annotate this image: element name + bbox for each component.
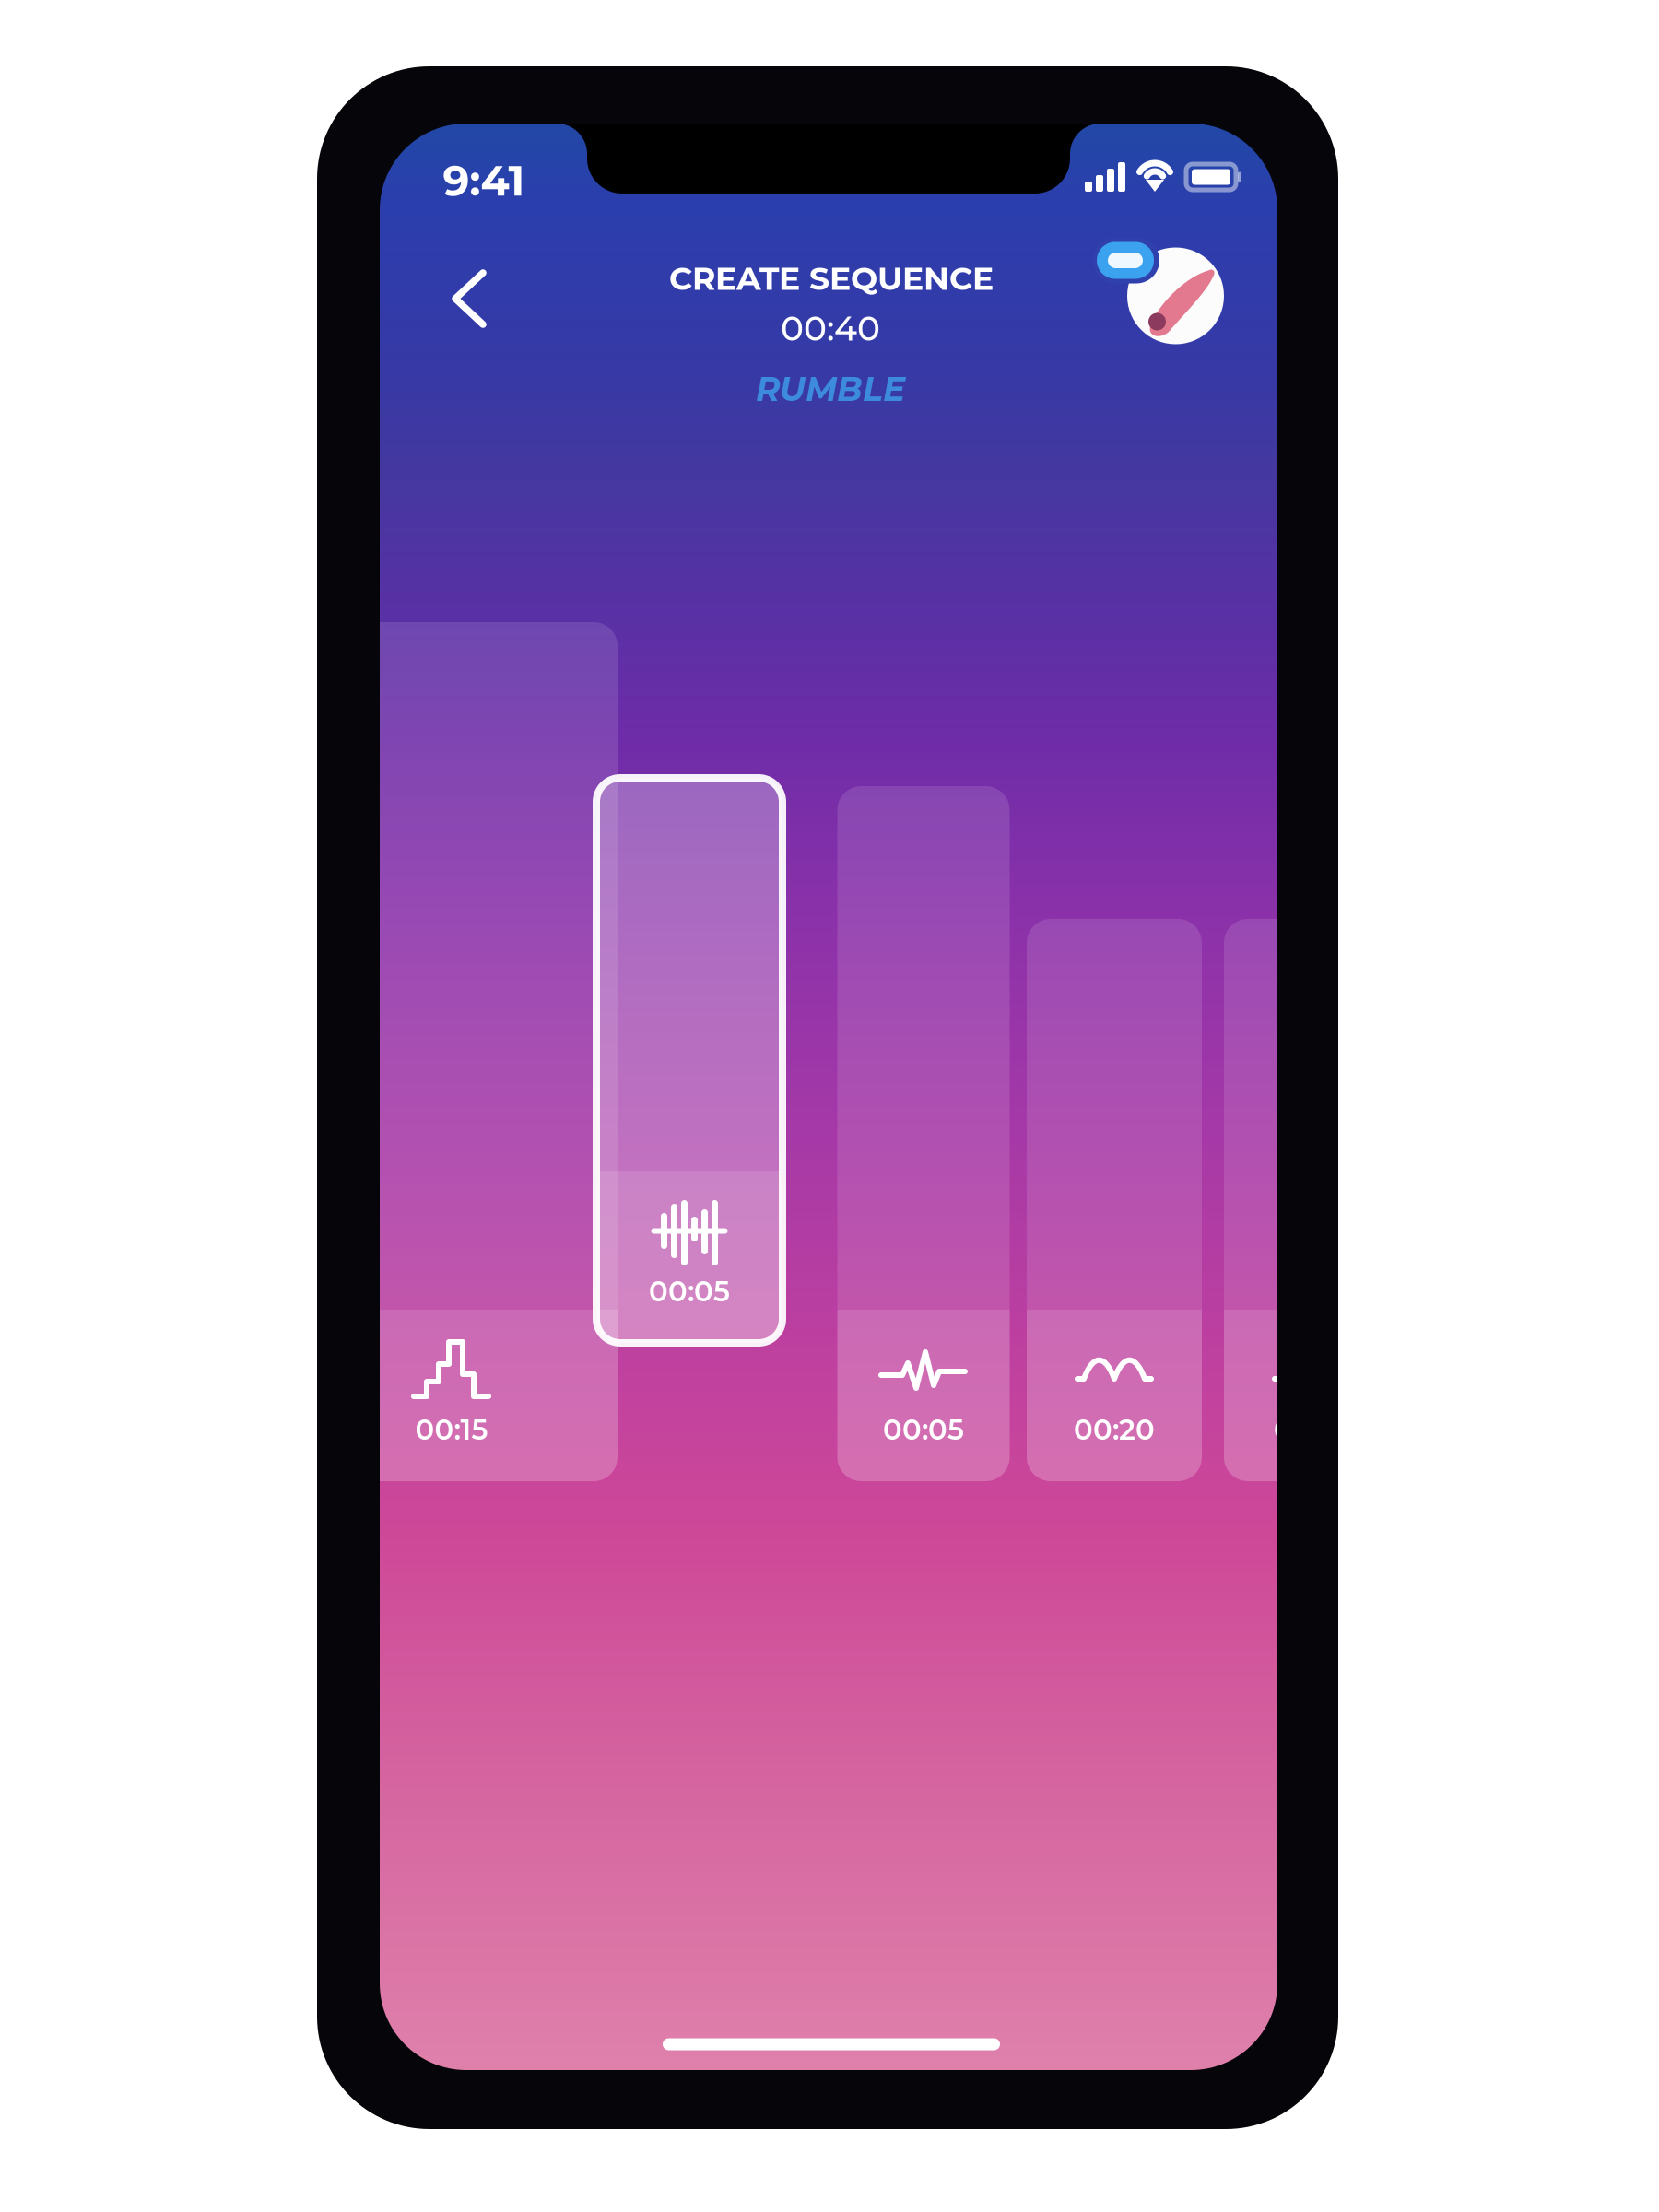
staticText: CREATE SEQUENCE <box>669 259 994 298</box>
staticText: 00:05 <box>883 1412 964 1447</box>
button[interactable]: 00:05 <box>596 778 782 1343</box>
staticText: 00:15 <box>415 1412 488 1447</box>
button[interactable]: 00:05 <box>837 786 1010 1481</box>
staticText: 00:40 <box>781 307 880 349</box>
staticText: RUMBLE <box>756 369 905 409</box>
button[interactable]: Back <box>419 249 519 348</box>
button[interactable]: 00:10 <box>1224 919 1399 1481</box>
button[interactable]: Connected device: battery level <box>1097 242 1224 344</box>
button[interactable]: 00:15 <box>286 622 618 1481</box>
button[interactable]: 00:20 <box>1027 919 1202 1481</box>
staticText: 00:05 <box>649 1274 730 1308</box>
staticText: 9:41 <box>443 155 525 206</box>
staticText: 00:10 <box>1274 1412 1349 1447</box>
staticText: 00:20 <box>1074 1412 1155 1447</box>
